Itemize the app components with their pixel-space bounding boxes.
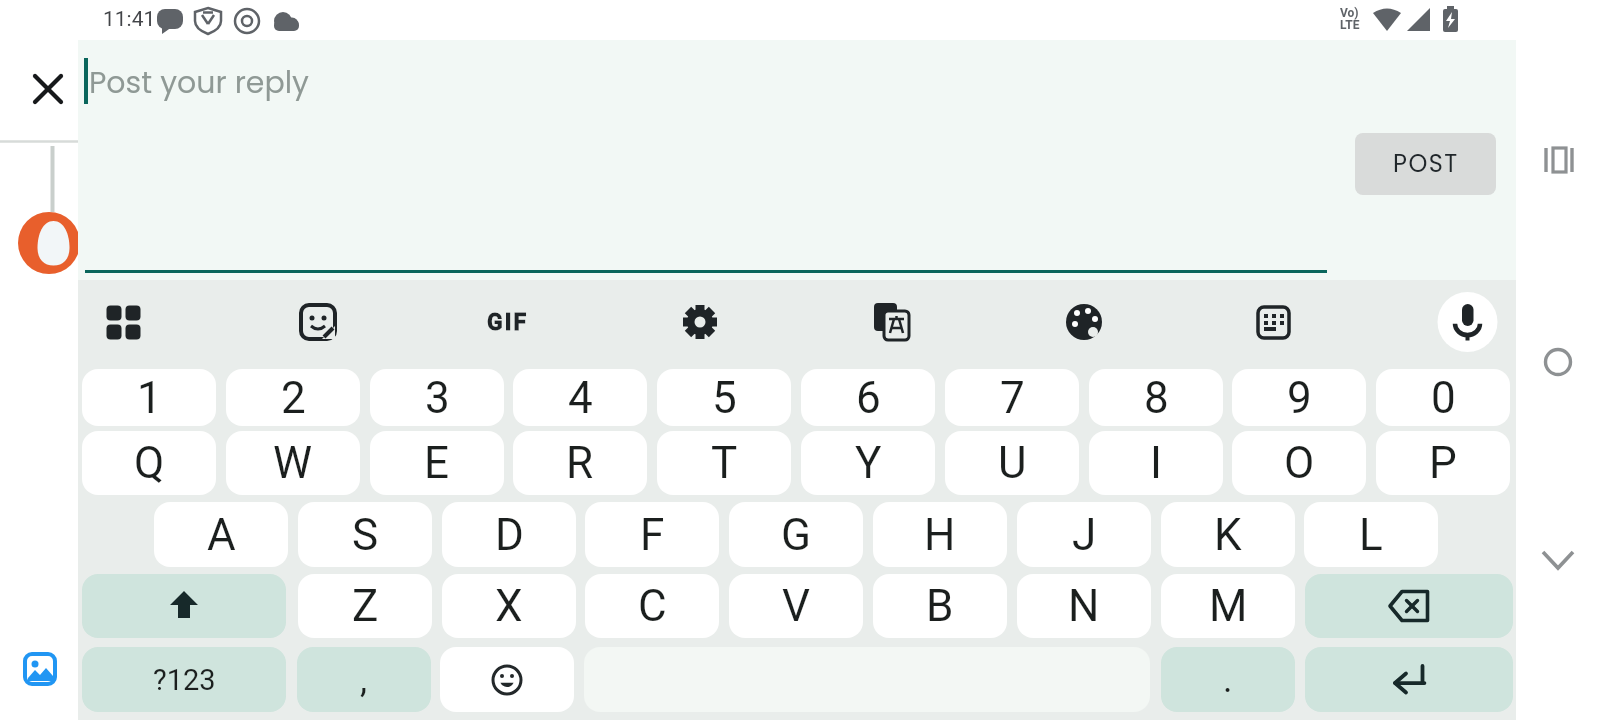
staticText: P [1429, 437, 1457, 489]
button[interactable]: Y [801, 431, 935, 495]
staticText: L [1359, 509, 1383, 561]
staticText: LTE [1340, 18, 1360, 32]
staticText: S [352, 509, 379, 561]
button[interactable]: C [585, 574, 719, 638]
staticText: F [640, 509, 665, 561]
button[interactable]: 8 [1089, 369, 1223, 426]
staticText: 11:41 [103, 7, 156, 32]
button[interactable]: , [297, 647, 431, 712]
button[interactable]: 7 [945, 369, 1079, 426]
button[interactable]: B [873, 574, 1007, 638]
button[interactable]: 4 [513, 369, 647, 426]
staticText: H [924, 509, 956, 561]
staticText: A [207, 509, 236, 561]
staticText: Z [352, 580, 379, 632]
staticText: T [711, 437, 738, 489]
staticText: 0 [1431, 372, 1456, 424]
staticText: Vo) [1340, 6, 1359, 20]
staticText: J [1072, 509, 1097, 561]
button[interactable]: E [370, 431, 504, 495]
staticText: M [1209, 580, 1248, 632]
staticText: ?123 [153, 663, 216, 697]
staticText: I [1150, 437, 1162, 489]
staticText: Q [134, 437, 165, 489]
button[interactable]: 5 [657, 369, 791, 426]
staticText: B [926, 580, 954, 632]
button[interactable]: . [1161, 647, 1295, 712]
button[interactable]: 3 [370, 369, 504, 426]
button[interactable]: V [729, 574, 863, 638]
staticText: 4 [568, 372, 593, 424]
staticText: , [360, 659, 368, 701]
staticText: D [495, 509, 524, 561]
button[interactable]: 1 [82, 369, 216, 426]
button[interactable]: N [1017, 574, 1151, 638]
button[interactable]: T [657, 431, 791, 495]
staticText: Y [855, 437, 882, 489]
button[interactable] [1536, 138, 1580, 182]
button[interactable] [1536, 538, 1580, 582]
button[interactable]: L [1304, 502, 1438, 567]
staticText: . [1223, 659, 1233, 701]
button[interactable]: A [154, 502, 288, 567]
button[interactable]: Q [82, 431, 216, 495]
staticText: 3 [425, 372, 450, 424]
button[interactable]: M [1161, 574, 1295, 638]
button[interactable]: J [1017, 502, 1151, 567]
staticText: C [638, 580, 667, 632]
staticText: 6 [856, 372, 881, 424]
button[interactable]: 2 [226, 369, 360, 426]
button[interactable]: G [729, 502, 863, 567]
button[interactable]: 9 [1232, 369, 1366, 426]
button[interactable]: 6 [801, 369, 935, 426]
staticText: V [782, 580, 811, 632]
staticText: O [1284, 437, 1315, 489]
staticText: 5 [712, 372, 737, 424]
button[interactable]: R [513, 431, 647, 495]
button[interactable]: K [1161, 502, 1295, 567]
button[interactable]: U [945, 431, 1079, 495]
staticText: X [495, 580, 523, 632]
button[interactable]: ?123 [82, 647, 286, 712]
button[interactable]: S [298, 502, 432, 567]
button[interactable]: I [1089, 431, 1223, 495]
button[interactable] [31, 72, 65, 106]
staticText: R [566, 437, 594, 489]
button[interactable]: Z [298, 574, 432, 638]
button[interactable] [1536, 340, 1580, 384]
staticText: 9 [1287, 372, 1312, 424]
staticText: E [424, 437, 450, 489]
button[interactable]: POST [1355, 133, 1496, 195]
staticText: N [1068, 580, 1100, 632]
button[interactable]: P [1376, 431, 1510, 495]
staticText: U [998, 437, 1027, 489]
button[interactable] [440, 647, 574, 712]
staticText: K [1214, 509, 1242, 561]
button[interactable]: 0 [1376, 369, 1510, 426]
staticText: POST [1393, 147, 1459, 181]
staticText: GIF [487, 309, 528, 336]
staticText: W [273, 437, 313, 489]
button[interactable]: X [442, 574, 576, 638]
staticText: 1 [137, 372, 162, 424]
staticText: 2 [281, 372, 306, 424]
staticText: 7 [1000, 372, 1025, 424]
button[interactable] [82, 574, 286, 638]
button[interactable] [1305, 574, 1513, 638]
button[interactable]: H [873, 502, 1007, 567]
staticText: Post your reply [89, 62, 309, 104]
button[interactable]: O [1232, 431, 1366, 495]
button[interactable] [22, 651, 62, 691]
button[interactable]: W [226, 431, 360, 495]
button[interactable]: D [442, 502, 576, 567]
button[interactable] [1305, 647, 1513, 712]
staticText: G [781, 509, 811, 561]
button[interactable]: F [585, 502, 719, 567]
staticText: 8 [1144, 372, 1169, 424]
